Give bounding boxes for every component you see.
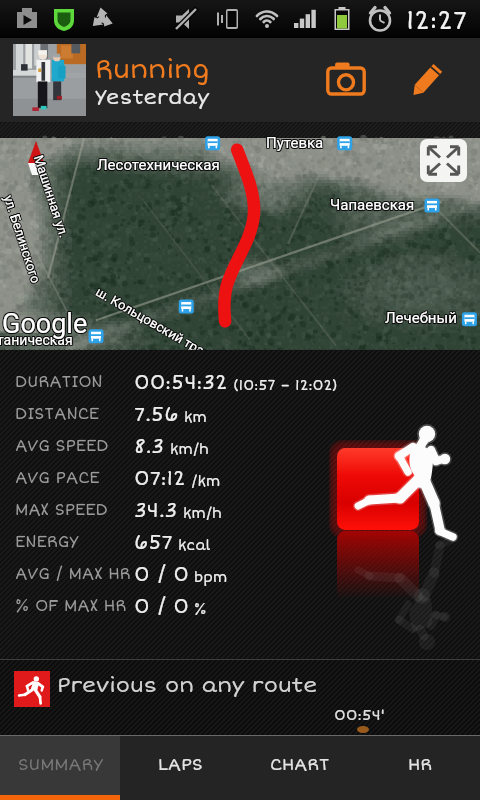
staticText: kcal (173, 537, 211, 554)
button[interactable]: HR (360, 736, 480, 795)
staticText: (10:57 – 12:02) (228, 377, 338, 394)
staticText: Чапаевская (329, 197, 414, 215)
staticText: Google (3, 307, 89, 339)
staticText: HR (408, 754, 432, 775)
staticText: Чапаевская (331, 197, 416, 215)
staticText: ул. Белинского (0, 193, 43, 286)
staticText: 00:54:32 (134, 370, 228, 395)
staticText: Путевка (265, 133, 323, 151)
staticText: таническая (0, 333, 74, 349)
staticText: Лечебный (385, 308, 457, 326)
staticText: Машинная ул. (32, 154, 73, 240)
staticText: Путевка (267, 135, 325, 153)
staticText: AVG / MAX HR (15, 564, 131, 584)
staticText: Google (2, 307, 88, 339)
staticText: /km (186, 473, 221, 490)
staticText: Лесотехническая (97, 156, 220, 174)
staticText: Чапаевская (331, 195, 416, 213)
staticText: ул. Белинского (1, 192, 44, 284)
button[interactable]: LAPS (120, 736, 240, 795)
button[interactable]: Edit activity (400, 55, 452, 107)
staticText: bpm (189, 569, 228, 586)
staticText: Машинная ул. (31, 153, 72, 240)
staticText: Google (3, 308, 89, 340)
button[interactable]: Previous on any route (0, 659, 480, 735)
staticText: Машинная ул. (30, 154, 71, 241)
staticText: таническая (0, 332, 74, 348)
staticText: Путевка (267, 133, 325, 151)
staticText: таническая (0, 331, 72, 347)
staticText: 07:12 (134, 466, 186, 491)
staticText: Google (1, 309, 87, 341)
staticText: Чапаевская (330, 195, 415, 213)
staticText: Google (1, 308, 87, 340)
staticText: 8.3 (134, 434, 165, 459)
staticText: DISTANCE (15, 404, 100, 424)
staticText: Running (95, 54, 210, 86)
staticText: Путевка (266, 134, 324, 152)
staticText: Лесотехническая (98, 157, 221, 175)
staticText: Лечебный (384, 310, 456, 328)
staticText: ул. Белинского (2, 194, 45, 286)
staticText: Машинная ул. (30, 153, 71, 240)
staticText: Лечебный (384, 309, 456, 327)
button[interactable]: CHART (240, 736, 360, 795)
staticText: Путевка (265, 134, 323, 152)
staticText: таническая (0, 332, 72, 348)
staticText: km (179, 409, 207, 426)
staticText: SUMMARY (18, 754, 103, 775)
staticText: таническая (0, 333, 72, 349)
button[interactable]: SUMMARY (0, 736, 120, 795)
staticText: Чапаевская (330, 196, 415, 214)
staticText: ш. Кольцовский тракт (94, 285, 219, 366)
staticText: CHART (270, 754, 330, 775)
staticText: Путевка (265, 135, 323, 153)
staticText: Google (2, 309, 88, 341)
staticText: ул. Белинского (0, 194, 43, 286)
staticText: ул. Белинского (2, 193, 44, 285)
staticText: % (189, 601, 207, 618)
staticText: 0 / 0 (134, 594, 189, 619)
staticText: Google (2, 308, 88, 340)
button[interactable]: Full screen map (420, 139, 467, 182)
staticText: 7.56 (134, 402, 179, 427)
staticText: ш. Кольцовский тракт (93, 285, 218, 366)
staticText: % OF MAX HR (15, 596, 127, 616)
staticText: Лечебный (386, 310, 458, 328)
staticText: Previous on any route (57, 672, 318, 698)
staticText: Лечебный (385, 310, 457, 328)
staticText: 657 (134, 530, 173, 555)
staticText: Лечебный (385, 309, 457, 327)
staticText: Лесотехническая (97, 157, 220, 175)
staticText: Чапаевская (329, 195, 414, 213)
staticText: Чапаевская (329, 196, 414, 214)
staticText: Лесотехническая (96, 156, 219, 174)
button[interactable]: Take photo (320, 55, 372, 107)
staticText: таническая (0, 331, 73, 347)
staticText: Машинная ул. (30, 152, 70, 239)
staticText: Лесотехническая (97, 155, 220, 173)
staticText: Машинная ул. (31, 154, 72, 240)
staticText: DURATION (15, 372, 103, 392)
staticText: ш. Кольцовский тракт (93, 284, 219, 365)
staticText: Лесотехническая (98, 155, 221, 173)
staticText: ул. Белинского (1, 193, 44, 285)
staticText: MAX SPEED (15, 500, 108, 520)
staticText: km/h (165, 441, 209, 458)
staticText: Google (1, 307, 87, 339)
staticText: ш. Кольцовский тракт (94, 284, 219, 365)
staticText: ул. Белинского (1, 192, 43, 284)
staticText: ENERGY (15, 532, 79, 552)
staticText: Путевка (266, 135, 324, 153)
staticText: AVG PACE (15, 468, 100, 488)
staticText: Машинная ул. (32, 153, 73, 239)
staticText: LAPS (158, 754, 203, 775)
staticText: Лечебный (384, 308, 456, 326)
staticText: ул. Белинского (0, 192, 42, 285)
staticText: Путевка (266, 133, 324, 151)
staticText: таническая (0, 333, 73, 349)
staticText: Лечебный (386, 309, 458, 327)
staticText: таническая (0, 331, 74, 347)
staticText: ш. Кольцовский тракт (93, 283, 218, 364)
staticText: Машинная ул. (31, 152, 72, 238)
